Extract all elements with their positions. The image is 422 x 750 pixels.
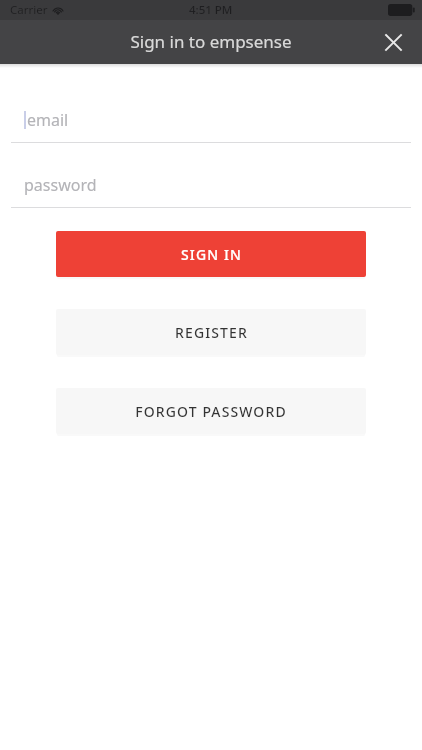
button[interactable]: FORGOT PASSWORD [56, 388, 366, 434]
staticText: Sign in to empsense [130, 30, 292, 53]
staticText: FORGOT PASSWORD [135, 402, 287, 421]
button[interactable]: SIGN IN [56, 231, 366, 277]
button[interactable]: password [0, 169, 422, 208]
staticText: password [24, 174, 97, 196]
button[interactable]: REGISTER [56, 309, 366, 355]
staticText: REGISTER [175, 323, 248, 342]
staticText: 4:51 PM [189, 2, 233, 18]
button[interactable]: email [0, 104, 422, 143]
staticText: SIGN IN [181, 245, 242, 264]
button[interactable]: Close [371, 20, 415, 64]
staticText: Carrier [10, 2, 48, 18]
staticText: email [27, 109, 69, 131]
